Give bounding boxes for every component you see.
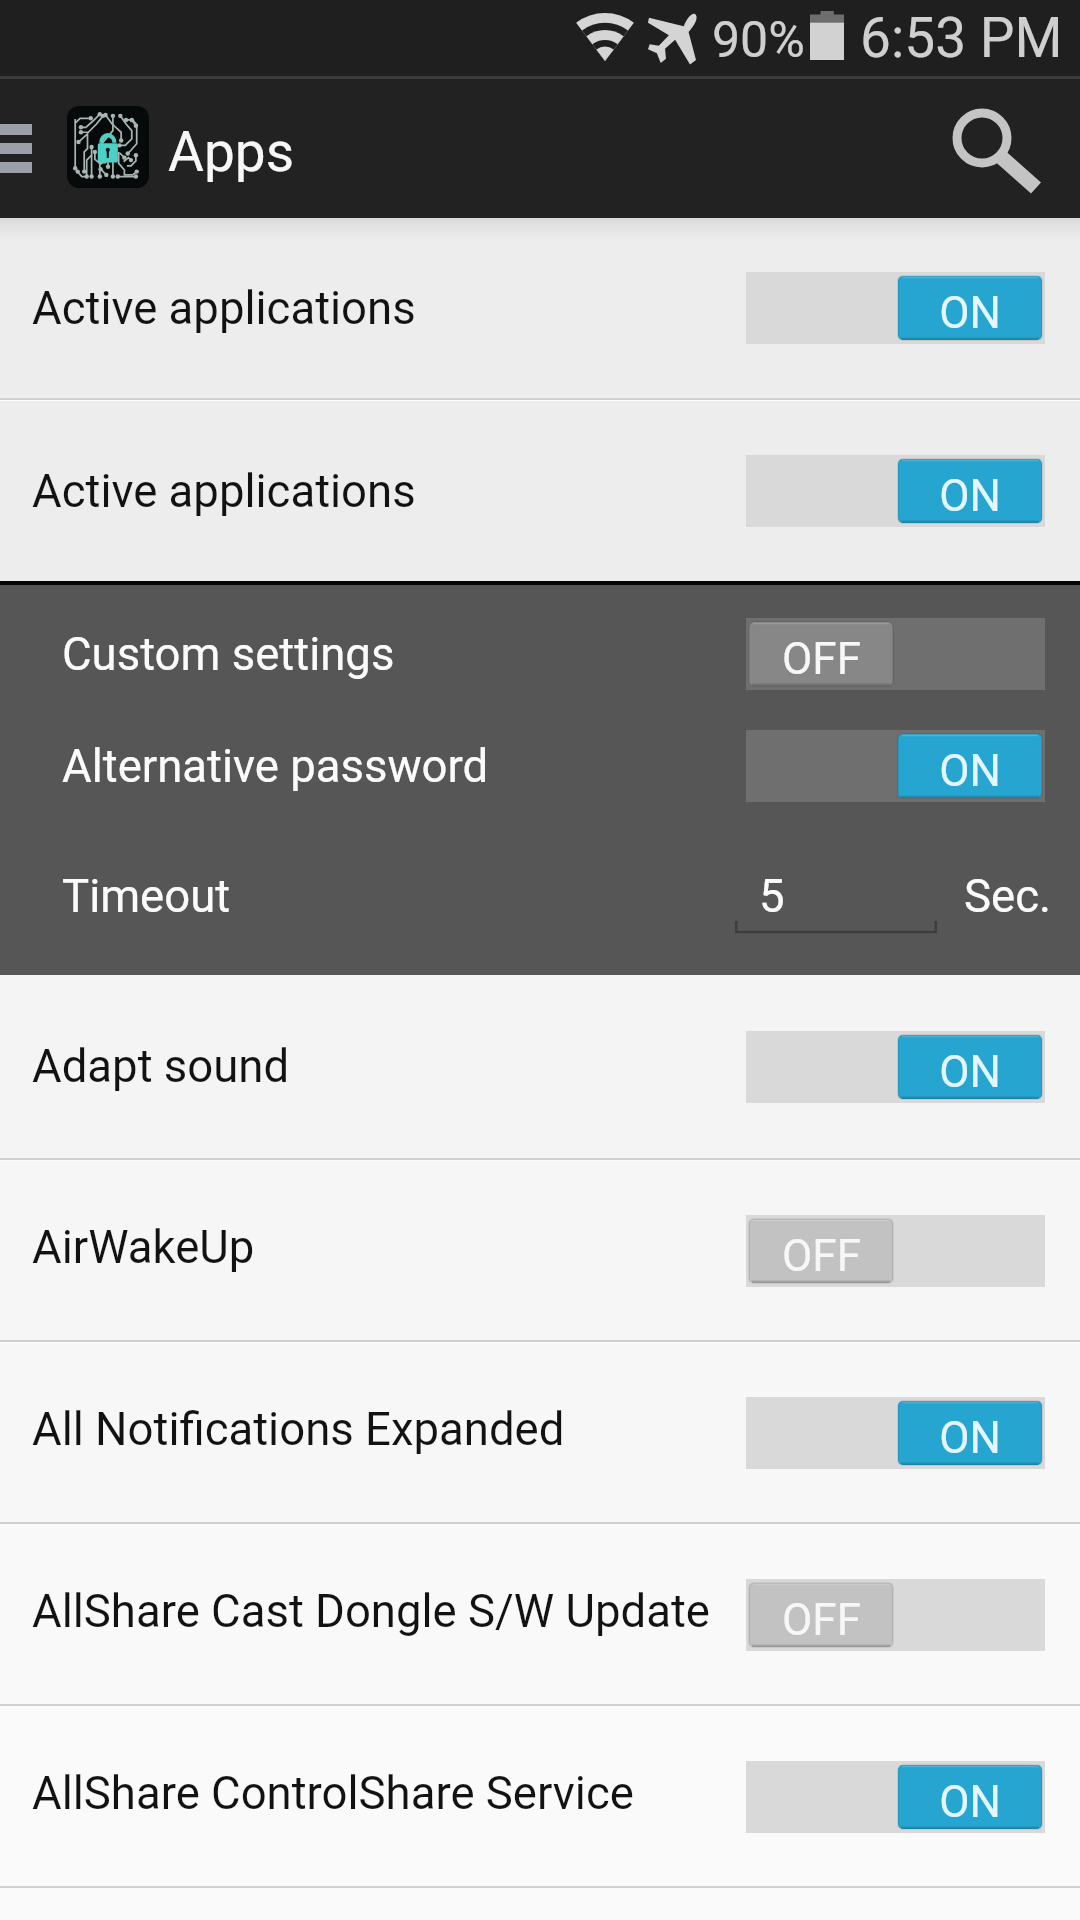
button[interactable]: Active applications [0, 401, 1080, 581]
staticText: OFF [782, 1594, 861, 1646]
staticText: Adapt sound [32, 1040, 290, 1093]
button[interactable]: AirWakeUp [0, 1161, 1080, 1340]
staticText: Timeout [62, 870, 231, 923]
staticText: All Notifications Expanded [32, 1403, 565, 1456]
button[interactable]: On [746, 1397, 1045, 1469]
button[interactable]: Search [930, 79, 1050, 218]
staticText: Sec. [964, 870, 1051, 923]
button[interactable]: On [746, 272, 1045, 344]
staticText: Alternative password [62, 740, 489, 793]
button[interactable]: Custom settings [0, 614, 1080, 694]
staticText: 6:53 PM [860, 6, 1063, 70]
staticText: ON [939, 1412, 1001, 1464]
button[interactable]: Alternative password [0, 726, 1080, 806]
button[interactable]: All Notifications Expanded [0, 1343, 1080, 1522]
button[interactable]: AllShare ControlShare Service [0, 1707, 1080, 1886]
button[interactable]: Off [746, 1579, 1045, 1651]
staticText: OFF [782, 1230, 861, 1282]
button[interactable]: On [746, 455, 1045, 527]
button[interactable]: Open navigation drawer [0, 79, 46, 218]
staticText: OFF [782, 633, 861, 685]
staticText: ON [939, 470, 1001, 522]
button[interactable]: On [746, 1761, 1045, 1833]
staticText: ON [939, 745, 1001, 797]
staticText: ON [939, 1776, 1001, 1828]
staticText: 5 [759, 870, 785, 923]
staticText: AllShare ControlShare Service [32, 1767, 634, 1820]
staticText: Custom settings [62, 628, 395, 681]
staticText: AirWakeUp [32, 1221, 255, 1274]
button[interactable]: On [746, 1031, 1045, 1103]
staticText: Active applications [32, 282, 416, 335]
button[interactable]: On [746, 730, 1045, 802]
button[interactable]: Active applications [0, 218, 1080, 398]
staticText: ON [939, 287, 1001, 339]
button[interactable]: AllShare Cast Dongle S/W Update [0, 1525, 1080, 1704]
staticText: Apps [168, 120, 295, 184]
button[interactable]: Adapt sound [0, 975, 1080, 1158]
button[interactable]: Off [746, 1215, 1045, 1287]
staticText: 90% [712, 11, 805, 70]
button[interactable]: Off [746, 618, 1045, 690]
staticText: AllShare Cast Dongle S/W Update [32, 1585, 710, 1638]
staticText: Active applications [32, 465, 416, 518]
staticText: ON [939, 1046, 1001, 1098]
